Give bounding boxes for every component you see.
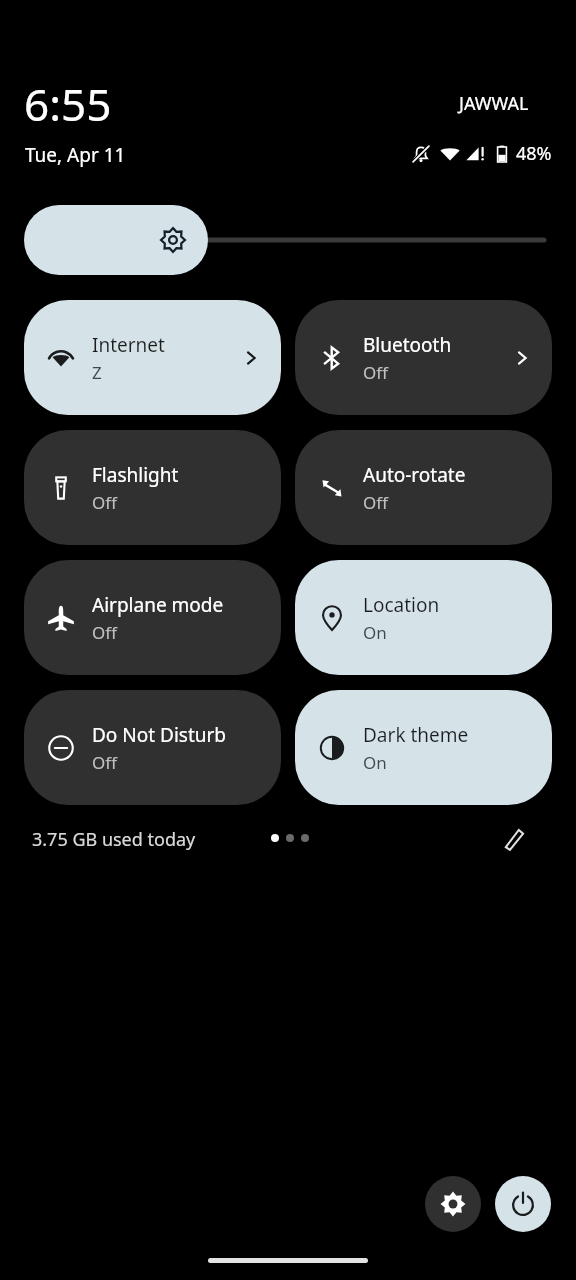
staticText: JAWWAL bbox=[459, 91, 529, 116]
staticText: 6:55 bbox=[24, 74, 112, 134]
button[interactable]: Dark theme bbox=[295, 690, 552, 805]
staticText: Off bbox=[92, 751, 117, 774]
button[interactable]: Location bbox=[295, 560, 552, 675]
button[interactable]: Auto-rotate bbox=[295, 430, 552, 545]
staticText: Off bbox=[92, 621, 117, 644]
staticText: Airplane mode bbox=[92, 592, 224, 618]
staticText: Off bbox=[92, 491, 117, 514]
staticText: Auto-rotate bbox=[363, 462, 466, 488]
button[interactable]: Settings bbox=[425, 1176, 481, 1232]
staticText: On bbox=[363, 751, 387, 774]
staticText: Off bbox=[363, 491, 388, 514]
button[interactable]: Do Not Disturb bbox=[24, 690, 281, 805]
staticText: Dark theme bbox=[363, 722, 469, 748]
staticText: On bbox=[363, 621, 387, 644]
button[interactable]: Brightness bbox=[24, 205, 208, 275]
button[interactable]: Power bbox=[495, 1176, 551, 1232]
staticText: Location bbox=[363, 592, 440, 618]
staticText: Internet bbox=[92, 332, 165, 358]
staticText: Z bbox=[92, 361, 102, 384]
button[interactable]: Edit tiles bbox=[493, 818, 535, 860]
button[interactable]: Flashlight bbox=[24, 430, 281, 545]
staticText: Tue, Apr 11 bbox=[25, 142, 126, 168]
staticText: Off bbox=[363, 361, 388, 384]
staticText: 48% bbox=[516, 141, 552, 166]
button[interactable]: Bluetooth bbox=[295, 300, 552, 415]
button[interactable]: Internet bbox=[24, 300, 281, 415]
button[interactable]: Airplane mode bbox=[24, 560, 281, 675]
staticText: Bluetooth bbox=[363, 332, 452, 358]
staticText: Flashlight bbox=[92, 462, 179, 488]
staticText: 3.75 GB used today bbox=[32, 827, 196, 852]
staticText: Do Not Disturb bbox=[92, 722, 227, 748]
